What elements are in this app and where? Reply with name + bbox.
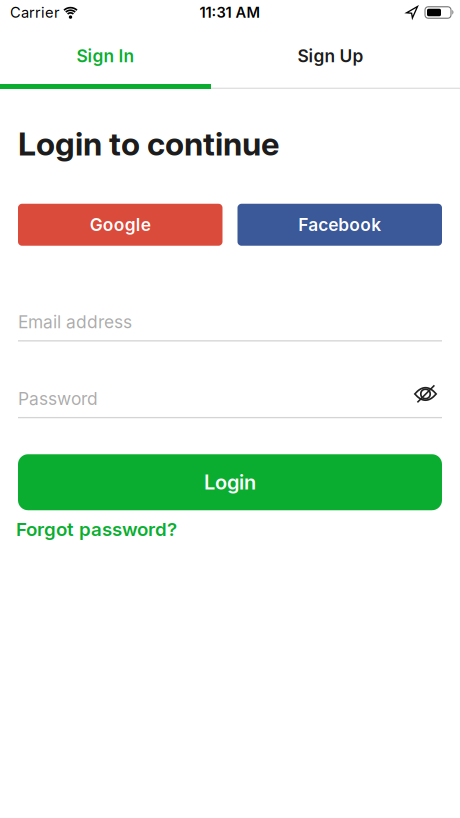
staticText: Forgot password?: [16, 518, 177, 540]
staticText: Login: [204, 470, 256, 494]
button[interactable]: Google: [18, 204, 222, 246]
staticText: Password: [18, 388, 98, 409]
staticText: Facebook: [298, 214, 381, 235]
button[interactable]: Login: [18, 454, 442, 510]
staticText: Google: [90, 214, 151, 235]
button[interactable]: Show password: [414, 386, 460, 402]
staticText: Login to continue: [18, 125, 279, 163]
button[interactable]: Forgot password?: [16, 518, 177, 540]
button[interactable]: Facebook: [237, 204, 442, 246]
button[interactable]: Sign Up: [211, 28, 460, 84]
staticText: 11:31 AM: [199, 4, 260, 21]
staticText: Sign In: [76, 46, 134, 66]
staticText: Sign Up: [297, 46, 363, 66]
button[interactable]: Sign In: [0, 28, 211, 84]
staticText: Email address: [18, 312, 132, 332]
staticText: Carrier: [10, 4, 60, 21]
